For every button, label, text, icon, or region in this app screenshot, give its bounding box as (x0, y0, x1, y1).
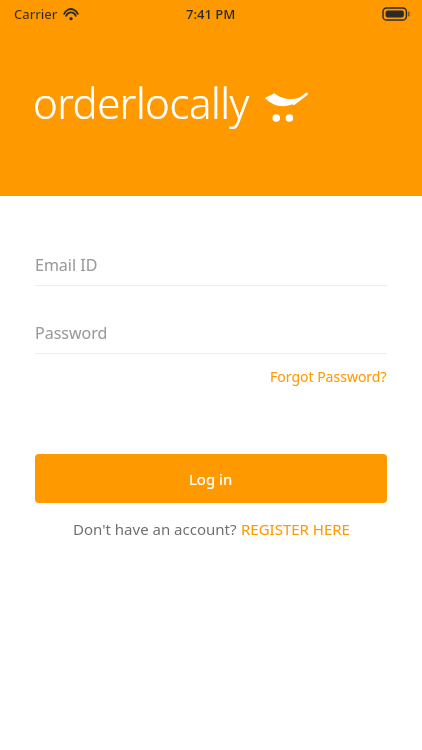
staticText: Don't have an account? (73, 519, 241, 539)
button[interactable]: Forgot Password? (270, 365, 387, 388)
staticText: 7:41 PM (186, 5, 236, 23)
staticText: Password (35, 322, 108, 344)
button[interactable]: Password (35, 322, 387, 354)
staticText: orderlocally (33, 74, 249, 131)
button[interactable]: Email ID (35, 254, 387, 286)
button[interactable]: Log in (35, 454, 387, 503)
button[interactable]: REGISTER HERE (241, 519, 350, 539)
staticText: Log in (189, 469, 233, 489)
staticText: Carrier (14, 5, 58, 23)
staticText: Email ID (35, 254, 98, 276)
